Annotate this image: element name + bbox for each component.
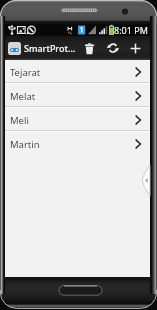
- button[interactable]: Delete: [78, 36, 101, 60]
- staticText: Melat: [10, 90, 36, 103]
- button[interactable]: Add: [124, 36, 147, 60]
- button[interactable]: Refresh: [101, 36, 124, 60]
- staticText: SmartProt…: [24, 42, 76, 54]
- button[interactable]: Meli: [5, 108, 150, 132]
- button[interactable]: Multi window tray: [142, 165, 150, 196]
- staticText: 8:01 PM: [114, 24, 148, 36]
- staticText: Tejarat: [10, 66, 41, 79]
- staticText: Martin: [10, 138, 40, 151]
- button[interactable]: Melat: [5, 84, 150, 108]
- staticText: Meli: [10, 114, 29, 127]
- button[interactable]: Martin: [5, 132, 150, 156]
- button[interactable]: Tejarat: [5, 60, 150, 84]
